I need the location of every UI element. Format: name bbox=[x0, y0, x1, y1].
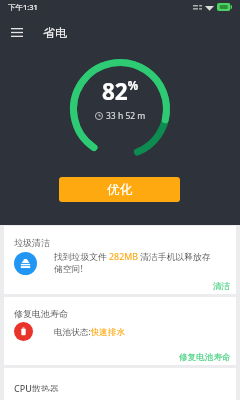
staticText: 电池状态:快速排水 bbox=[54, 326, 126, 338]
staticText: 修复电池寿命 bbox=[179, 352, 231, 363]
staticText: 找到垃圾文件 282MB 清洁手机以释放存储空间! bbox=[54, 251, 213, 275]
button[interactable]: 修复电池寿命 bbox=[178, 351, 232, 364]
staticText: 33 h 52 m bbox=[106, 110, 146, 122]
button[interactable]: Menu bbox=[0, 16, 33, 49]
staticText: 垃圾清洁 bbox=[14, 237, 50, 248]
staticText: 清洁 bbox=[213, 281, 231, 292]
button[interactable]: 清洁 bbox=[212, 280, 232, 293]
staticText: 优化 bbox=[107, 182, 132, 198]
staticText: 修复电池寿命 bbox=[14, 308, 68, 319]
staticText: 省电 bbox=[43, 25, 67, 40]
button[interactable]: 优化 bbox=[59, 177, 180, 202]
staticText: 82% bbox=[102, 76, 139, 107]
staticText: CPU散热器 bbox=[14, 382, 59, 392]
staticText: 下午1:31 bbox=[8, 2, 38, 12]
